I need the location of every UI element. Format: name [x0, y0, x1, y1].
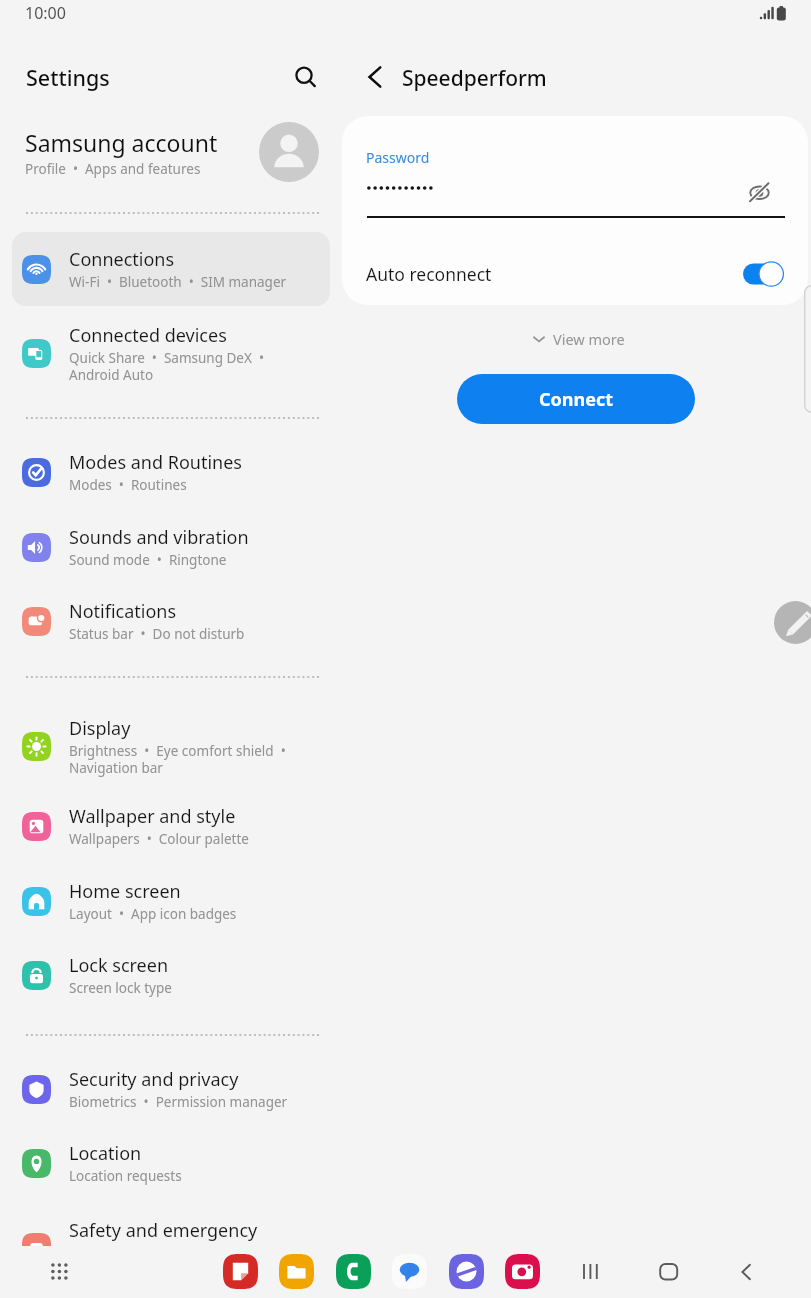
button[interactable]: Back	[728, 1254, 764, 1290]
button[interactable]: Search	[285, 56, 325, 96]
staticText: Security and privacy	[69, 1067, 239, 1092]
button[interactable]: Sounds and vibration	[12, 516, 330, 578]
button[interactable]: Notifications	[12, 590, 330, 652]
button[interactable]: Modes and Routines	[12, 441, 330, 503]
staticText: Quick Share • Samsung DeX • Android Auto	[69, 349, 264, 384]
staticText: Medical info • Emergency sharing	[69, 1246, 288, 1264]
staticText: Location requests	[69, 1167, 182, 1185]
staticText: Wallpaper and style	[69, 804, 236, 829]
button[interactable]: Recents	[574, 1254, 610, 1290]
staticText: View more	[553, 329, 625, 349]
staticText: Sound mode • Ringtone	[69, 551, 227, 569]
staticText: 10:00	[25, 2, 66, 24]
staticText: Status bar • Do not disturb	[69, 625, 245, 643]
staticText: Connections	[69, 247, 175, 272]
staticText: Connect	[539, 387, 614, 412]
button[interactable]: phone	[332, 1250, 374, 1292]
staticText: Sounds and vibration	[69, 525, 249, 550]
button[interactable]: messages	[388, 1250, 430, 1292]
staticText: Wi-Fi • Bluetooth • SIM manager	[69, 273, 287, 291]
staticText: Layout • App icon badges	[69, 905, 237, 923]
button[interactable]: Lock screen	[12, 944, 330, 1006]
button[interactable]: Display	[12, 708, 330, 784]
staticText: Profile • Apps and features	[25, 160, 201, 178]
staticText: Brightness • Eye comfort shield • Naviga…	[69, 742, 286, 777]
button[interactable]: Back	[355, 57, 395, 97]
button[interactable]: Security and privacy	[12, 1058, 330, 1120]
staticText: Auto reconnect	[366, 262, 492, 286]
button[interactable]: View more	[525, 323, 633, 355]
staticText: Password	[366, 148, 430, 167]
button[interactable]: internet	[445, 1250, 487, 1292]
button[interactable]: Connections	[12, 232, 330, 306]
button[interactable]: Apps	[42, 1254, 80, 1292]
button[interactable]: Edit	[774, 601, 811, 644]
button[interactable]: Home screen	[12, 870, 330, 932]
button[interactable]: Wallpaper and style	[12, 795, 330, 857]
button[interactable]: Samsung account	[0, 114, 336, 190]
staticText: Notifications	[69, 599, 177, 624]
button[interactable]: Home	[651, 1254, 687, 1290]
button[interactable]: Connect	[457, 374, 695, 424]
staticText: Samsung account	[25, 127, 218, 158]
staticText: Screen lock type	[69, 979, 172, 997]
staticText: Display	[69, 716, 131, 741]
staticText: Wallpapers • Colour palette	[69, 830, 249, 848]
button[interactable]: files	[275, 1250, 317, 1292]
staticText: Home screen	[69, 879, 181, 904]
button[interactable]: Connected devices	[12, 315, 330, 391]
staticText: Biometrics • Permission manager	[69, 1093, 288, 1111]
staticText: Safety and emergency	[69, 1218, 258, 1243]
staticText: Modes and Routines	[69, 450, 242, 475]
button[interactable]: Location	[12, 1132, 330, 1194]
staticText: Connected devices	[69, 323, 227, 348]
button[interactable]: Safety and emergency	[12, 1208, 330, 1270]
staticText: Modes • Routines	[69, 476, 187, 494]
button[interactable]: notes	[219, 1250, 261, 1292]
staticText: Location	[69, 1141, 142, 1166]
button[interactable]: camera	[501, 1250, 543, 1292]
staticText: Lock screen	[69, 953, 169, 978]
button[interactable]: Auto reconnect	[743, 257, 793, 291]
staticText: Speedperform	[402, 64, 547, 93]
button[interactable]: Show password	[738, 171, 780, 213]
staticText: Settings	[26, 63, 110, 92]
